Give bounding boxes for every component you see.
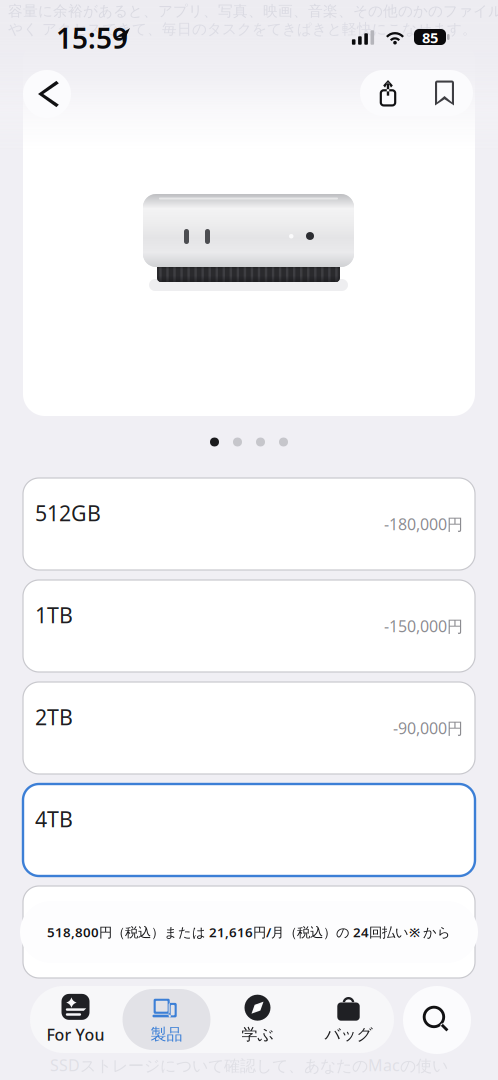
button[interactable]: Back <box>23 70 71 118</box>
staticText: 518,800円（税込）または 21,616円/月（税込）の 24回払い※ から <box>47 923 451 941</box>
staticText: 容量に余裕があると、アプリ、写真、映画、音楽、その他のかのファイルにすば <box>8 2 498 20</box>
button[interactable]: For You <box>30 986 121 1053</box>
staticText: 85 <box>422 28 438 47</box>
staticText: 512GB <box>35 499 101 527</box>
staticText: バッグ <box>324 1025 372 1044</box>
staticText: -0円 <box>433 921 463 943</box>
staticText: 4TB <box>35 805 73 833</box>
button[interactable]: Save <box>416 70 473 116</box>
button[interactable]: 製品 <box>121 986 212 1053</box>
staticText: 1TB <box>35 601 73 629</box>
staticText: 8TB <box>35 907 73 935</box>
staticText: -180,000円 <box>384 513 463 535</box>
staticText: 2TB <box>35 703 73 731</box>
staticText: For You <box>46 1024 104 1045</box>
staticText: 15:59 <box>56 19 128 57</box>
button[interactable]: 512GB <box>23 478 475 570</box>
button[interactable]: 1TB <box>23 580 475 672</box>
staticText: 製品 <box>150 1025 182 1044</box>
button[interactable]: Share <box>360 70 416 116</box>
staticText: SSDストレージについて確認して、あなたのMacの使い <box>50 1054 448 1076</box>
staticText: やく アクセスできて、毎日のタスクをてきぱきと軽快にこなせます。 <box>8 20 477 38</box>
button[interactable]: 8TB <box>23 886 475 978</box>
button[interactable]: 2TB <box>23 682 475 774</box>
staticText: -90,000円 <box>393 717 463 739</box>
button[interactable]: バッグ <box>303 986 394 1053</box>
button[interactable]: 4TB <box>23 784 475 876</box>
staticText: -150,000円 <box>384 615 463 637</box>
button[interactable]: 学ぶ <box>212 986 303 1053</box>
button[interactable]: Search <box>403 986 471 1054</box>
staticText: 学ぶ <box>241 1025 273 1044</box>
